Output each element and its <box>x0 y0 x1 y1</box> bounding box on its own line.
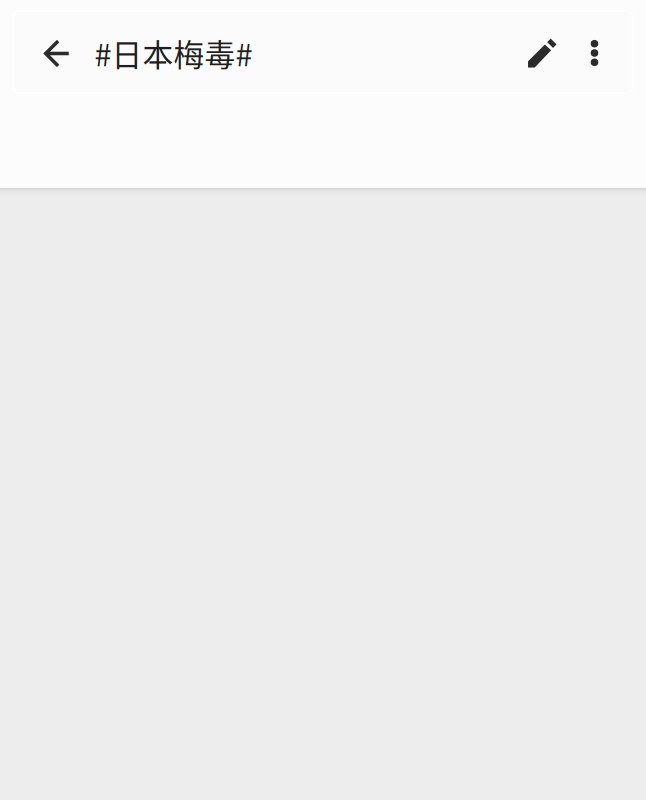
button[interactable]: Edit <box>514 11 570 93</box>
button[interactable]: More options <box>570 11 632 93</box>
button[interactable]: Back <box>13 11 97 93</box>
staticText: #日本梅毒# <box>94 31 252 75</box>
